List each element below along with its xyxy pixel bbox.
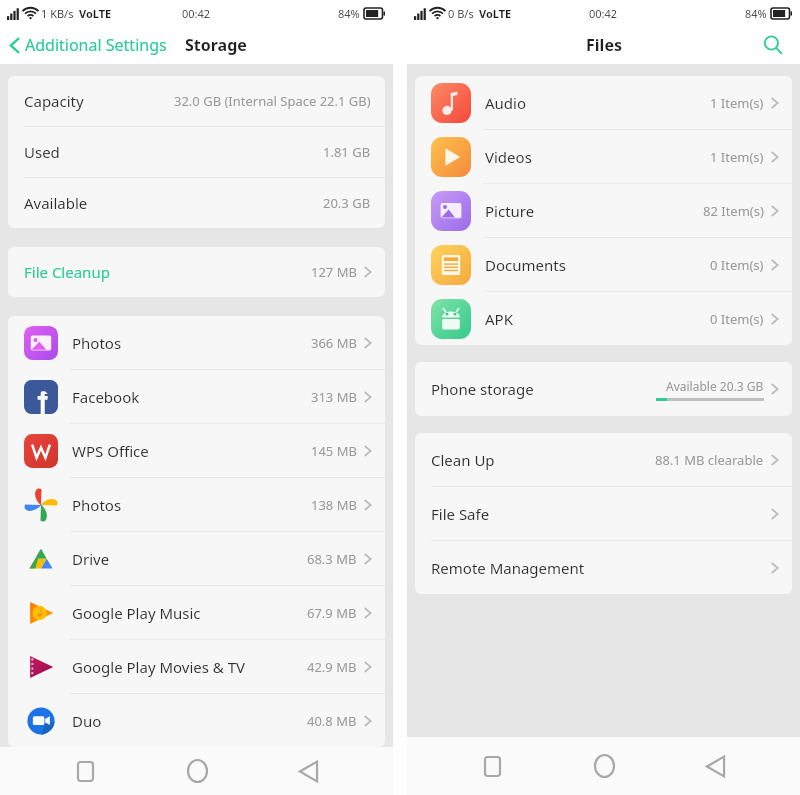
staticText: Phone storage — [431, 379, 534, 399]
staticText: 84% — [745, 6, 767, 21]
staticText: 00:42 — [182, 6, 211, 21]
staticText: Capacity — [24, 91, 84, 111]
staticText: 0 B/s — [448, 6, 474, 21]
staticText: Available — [24, 193, 88, 213]
staticText: 88.1 MB clearable — [655, 451, 764, 469]
staticText: 68.3 MB — [307, 550, 357, 568]
staticText: Photos — [72, 495, 122, 515]
button[interactable]: Home — [170, 747, 224, 795]
staticText: 366 MB — [311, 334, 357, 352]
button[interactable]: Back — [688, 739, 742, 793]
button[interactable]: Back — [281, 747, 335, 795]
staticText: 1.81 GB — [323, 143, 371, 161]
staticText: Remote Management — [431, 558, 585, 578]
button[interactable]: Search — [756, 28, 790, 62]
button[interactable]: Additional Settings — [0, 34, 173, 56]
staticText: 20.3 GB — [323, 194, 371, 212]
staticText: APK — [485, 309, 513, 329]
button[interactable]: Duo — [8, 694, 385, 747]
staticText: Files — [586, 34, 622, 56]
button[interactable]: Used — [8, 127, 385, 177]
staticText: 1 KB/s — [41, 6, 74, 21]
staticText: Available 20.3 GB — [666, 378, 764, 394]
staticText: Additional Settings — [25, 34, 167, 56]
button[interactable]: Available — [8, 178, 385, 228]
staticText: 0 Item(s) — [710, 310, 764, 328]
button[interactable]: APK — [415, 292, 792, 345]
button[interactable]: Google Play Music — [8, 586, 385, 639]
staticText: Facebook — [72, 387, 140, 407]
staticText: 1 Item(s) — [710, 94, 764, 112]
button[interactable]: Google Play Movies & TV — [8, 640, 385, 693]
button[interactable]: Recents — [58, 747, 112, 795]
staticText: 145 MB — [311, 442, 357, 460]
button[interactable]: Audio — [415, 76, 792, 129]
staticText: Videos — [485, 147, 532, 167]
button[interactable]: Photos — [8, 316, 385, 369]
button[interactable]: Remote Management — [415, 541, 792, 594]
staticText: 67.9 MB — [307, 604, 357, 622]
button[interactable]: Home — [577, 739, 631, 793]
button[interactable]: Recents — [465, 739, 519, 793]
button[interactable]: Capacity — [8, 76, 385, 126]
staticText: Photos — [72, 333, 122, 353]
staticText: Used — [24, 142, 60, 162]
staticText: Duo — [72, 711, 102, 731]
staticText: File Safe — [431, 504, 490, 524]
staticText: WPS Office — [72, 441, 149, 461]
button[interactable]: Documents — [415, 238, 792, 291]
staticText: 138 MB — [311, 496, 357, 514]
button[interactable]: WPS Office — [8, 424, 385, 477]
staticText: Google Play Music — [72, 603, 201, 623]
staticText: Drive — [72, 549, 110, 569]
staticText: 127 MB — [311, 263, 357, 281]
button[interactable]: Videos — [415, 130, 792, 183]
button[interactable]: Facebook — [8, 370, 385, 423]
button[interactable]: Drive — [8, 532, 385, 585]
button[interactable]: File Safe — [415, 487, 792, 540]
staticText: Audio — [485, 93, 527, 113]
staticText: Picture — [485, 201, 535, 221]
staticText: 00:42 — [589, 6, 618, 21]
staticText: Documents — [485, 255, 566, 275]
staticText: VoLTE — [79, 6, 112, 21]
staticText: 313 MB — [311, 388, 357, 406]
staticText: 0 Item(s) — [710, 256, 764, 274]
staticText: Clean Up — [431, 450, 495, 470]
staticText: 32.0 GB (Internal Space 22.1 GB) — [174, 92, 371, 110]
button[interactable]: File Cleanup — [8, 247, 385, 297]
staticText: 1 Item(s) — [710, 148, 764, 166]
button[interactable]: Phone storage — [415, 362, 792, 416]
button[interactable]: Photos — [8, 478, 385, 531]
staticText: 84% — [338, 6, 360, 21]
staticText: VoLTE — [479, 6, 512, 21]
button[interactable]: Picture — [415, 184, 792, 237]
staticText: Google Play Movies & TV — [72, 657, 246, 677]
staticText: File Cleanup — [24, 262, 110, 282]
staticText: 40.8 MB — [307, 712, 357, 730]
staticText: 42.9 MB — [307, 658, 357, 676]
button[interactable]: Clean Up — [415, 433, 792, 486]
staticText: 82 Item(s) — [703, 202, 764, 220]
staticText: Storage — [185, 34, 247, 56]
